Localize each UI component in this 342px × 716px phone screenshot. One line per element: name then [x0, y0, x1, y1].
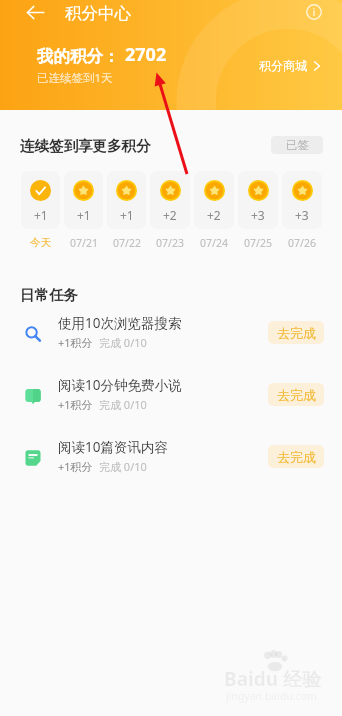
staticText: 07/23: [156, 236, 184, 250]
staticText: 使用10次浏览器搜索: [58, 314, 182, 332]
staticText: 阅读10分钟免费小说: [58, 376, 182, 394]
button[interactable]: +3: [282, 171, 322, 250]
staticText: 07/21: [70, 236, 98, 250]
button[interactable]: 已签: [271, 136, 323, 154]
staticText: +1积分: [58, 397, 93, 412]
button[interactable]: 阅读10篇资讯内容: [0, 425, 342, 487]
button[interactable]: +2: [150, 171, 190, 250]
button[interactable]: 去完成: [268, 321, 324, 344]
button[interactable]: Back: [21, 0, 49, 26]
staticText: +2: [207, 207, 221, 223]
staticText: 积分中心: [65, 3, 131, 24]
staticText: 07/24: [200, 236, 228, 250]
staticText: +1: [77, 207, 91, 223]
button[interactable]: 使用10次浏览器搜索: [0, 301, 342, 363]
button[interactable]: Info: [300, 0, 328, 26]
staticText: 完成 0/10: [99, 397, 147, 412]
staticText: +1积分: [58, 459, 93, 474]
staticText: +1: [34, 207, 48, 223]
staticText: +1: [120, 207, 134, 223]
staticText: 已连续签到1天: [37, 70, 113, 86]
staticText: +3: [251, 207, 265, 223]
staticText: 日常任务: [20, 286, 78, 304]
staticText: 我的积分：: [37, 46, 120, 67]
button[interactable]: 去完成: [268, 445, 324, 468]
staticText: 07/26: [288, 236, 316, 250]
staticText: 去完成: [277, 449, 316, 465]
staticText: Baidu 经验: [224, 666, 321, 692]
button[interactable]: +1: [64, 171, 103, 250]
button[interactable]: 去完成: [268, 383, 324, 406]
button[interactable]: +1: [21, 171, 60, 249]
staticText: 连续签到享更多积分: [20, 137, 151, 155]
button[interactable]: 积分商城: [253, 52, 328, 79]
staticText: 已签: [286, 138, 309, 152]
button[interactable]: +1: [107, 171, 146, 250]
button[interactable]: +3: [238, 171, 278, 250]
staticText: +2: [163, 207, 177, 223]
staticText: 07/25: [244, 236, 272, 250]
staticText: +1积分: [58, 335, 93, 350]
staticText: 完成 0/10: [99, 335, 147, 350]
staticText: 去完成: [277, 325, 316, 341]
button[interactable]: 阅读10分钟免费小说: [0, 363, 342, 425]
staticText: 2702: [125, 42, 167, 67]
staticText: 今天: [30, 236, 51, 249]
staticText: +3: [295, 207, 309, 223]
staticText: 去完成: [277, 387, 316, 403]
staticText: 07/22: [113, 236, 141, 250]
staticText: 完成 0/10: [99, 459, 147, 474]
staticText: 阅读10篇资讯内容: [58, 438, 168, 456]
staticText: 积分商城: [259, 58, 307, 73]
button[interactable]: +2: [194, 171, 234, 250]
staticText: jingyan.baidu.com: [226, 689, 317, 703]
